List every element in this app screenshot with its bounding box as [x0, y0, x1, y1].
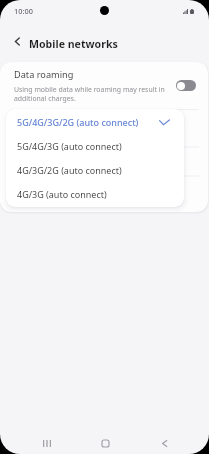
button[interactable]: 4G/3G (auto connect) — [6, 182, 184, 206]
staticText: 10:00 — [14, 6, 33, 16]
button[interactable]: 5G/4G/3G (auto connect) — [6, 134, 184, 158]
staticText: 4G/3G/2G (auto connect) — [17, 164, 175, 176]
staticText: 4G/3G (auto connect) — [17, 188, 175, 200]
button[interactable]: Home — [88, 426, 122, 454]
button[interactable]: 4G/3G/2G (auto connect) — [6, 158, 184, 182]
button[interactable]: 5G/4G/3G/2G (auto connect) — [6, 110, 184, 134]
button[interactable]: Back — [147, 426, 181, 454]
staticText: 5G/4G/3G/2G (auto connect) — [17, 116, 175, 128]
button[interactable]: Data roaming — [0, 62, 208, 108]
staticText: Data roaming — [14, 68, 74, 81]
staticText: 5G/4G/3G (auto connect) — [17, 140, 175, 152]
button[interactable]: Navigate up — [6, 30, 28, 52]
button[interactable]: Recent apps — [30, 426, 64, 454]
staticText: Mobile networks — [29, 37, 118, 51]
button[interactable]: Data roaming switch — [176, 80, 196, 91]
staticText: Using mobile data while roaming may resu… — [14, 85, 184, 103]
